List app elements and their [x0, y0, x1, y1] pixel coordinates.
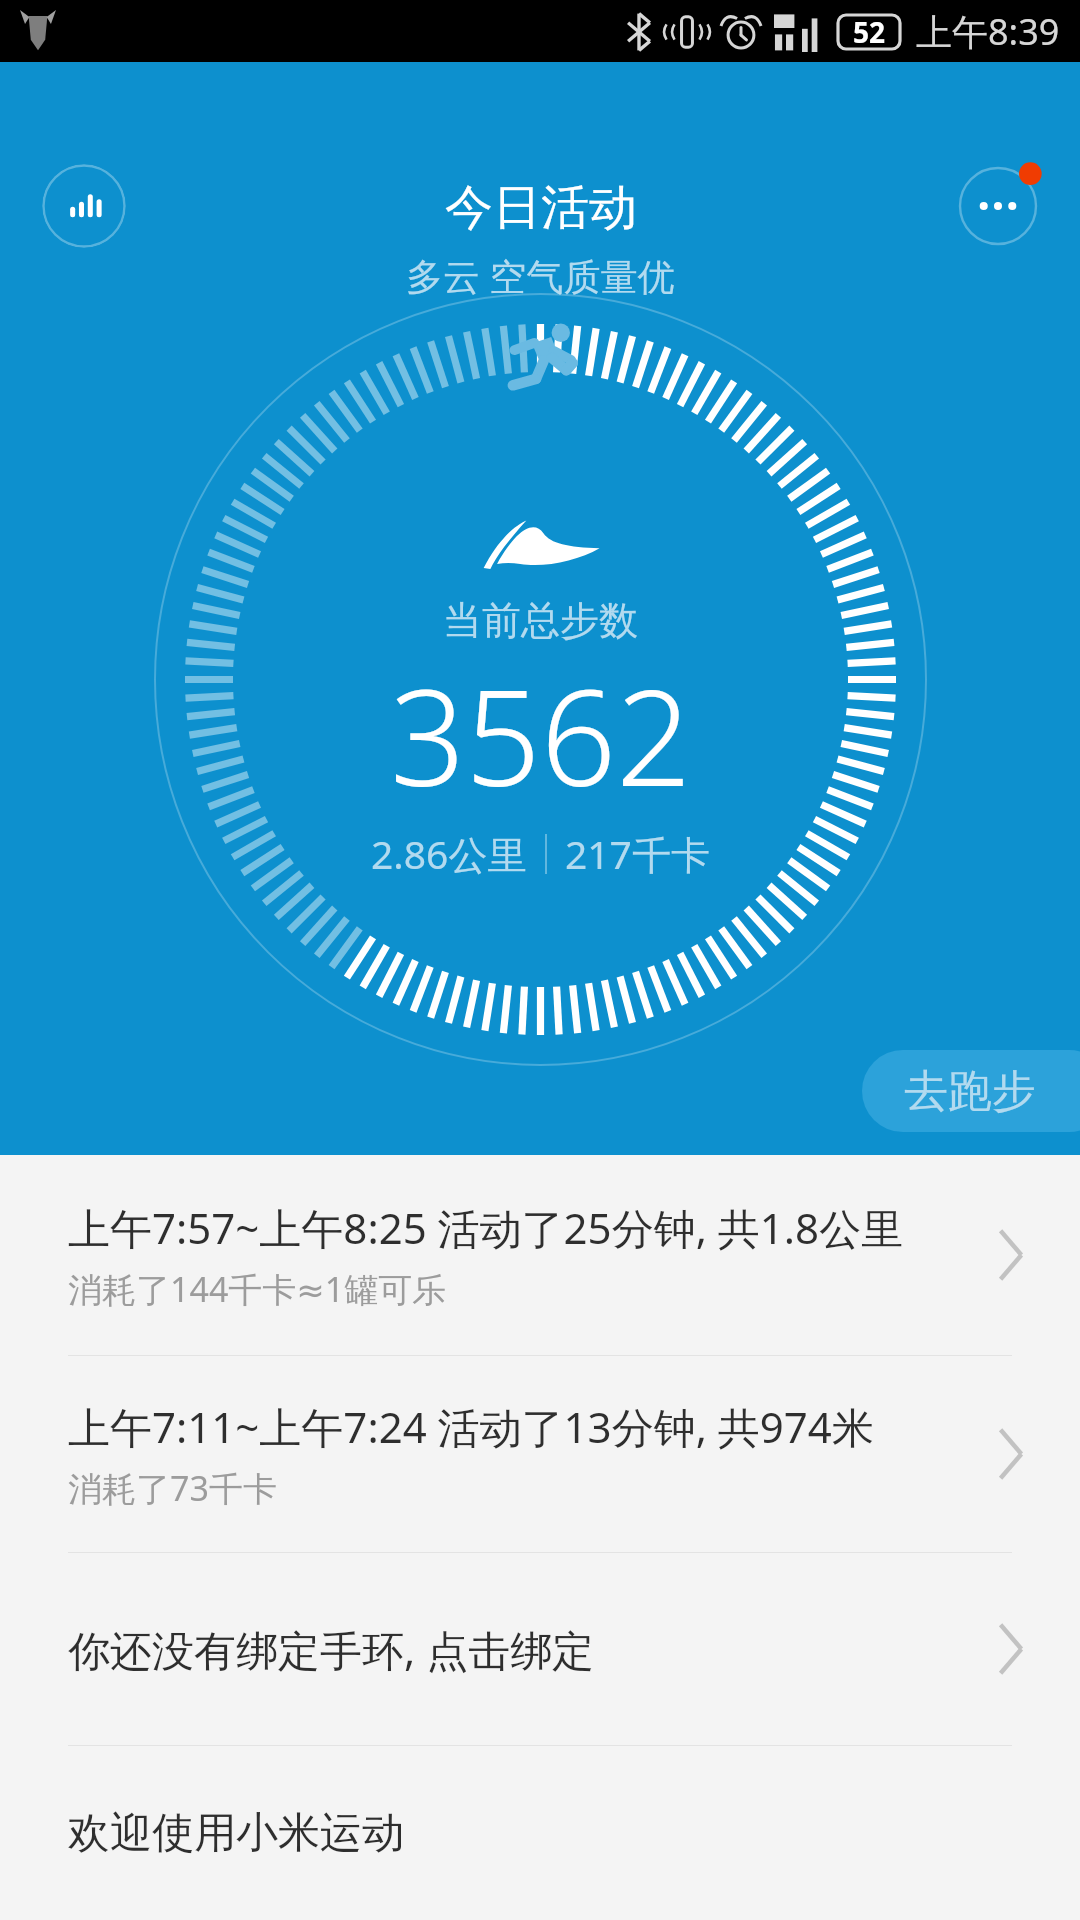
- button[interactable]: Statistics: [42, 164, 126, 248]
- staticText: 52: [853, 13, 886, 51]
- staticText: 上午7:11~上午7:24 活动了13分钟, 共974米: [68, 1398, 874, 1455]
- staticText: 上午7:57~上午8:25 活动了25分钟, 共1.8公里: [68, 1199, 904, 1256]
- button[interactable]: More options: [956, 164, 1040, 248]
- button[interactable]: 欢迎使用小米运动: [0, 1746, 1080, 1920]
- staticText: 217千卡: [565, 827, 710, 880]
- staticText: 2.86公里: [371, 827, 527, 880]
- staticText: 你还没有绑定手环, 点击绑定: [68, 1621, 595, 1678]
- staticText: 3562: [390, 645, 692, 825]
- staticText: 去跑步: [904, 1064, 1036, 1119]
- staticText: 当前总步数: [443, 596, 638, 645]
- staticText: 上午8:39: [916, 7, 1060, 56]
- staticText: 消耗了73千卡: [68, 1465, 277, 1511]
- staticText: 多云 空气质量优: [406, 250, 675, 301]
- staticText: 欢迎使用小米运动: [68, 1807, 404, 1860]
- staticText: 今日活动: [445, 178, 637, 238]
- button[interactable]: 上午7:11~上午7:24 活动了13分钟, 共974米: [0, 1356, 1080, 1552]
- staticText: 消耗了144千卡≈1罐可乐: [68, 1266, 447, 1312]
- button[interactable]: 去跑步: [862, 1050, 1080, 1132]
- button[interactable]: 上午7:57~上午8:25 活动了25分钟, 共1.8公里: [0, 1155, 1080, 1355]
- button[interactable]: 你还没有绑定手环, 点击绑定: [0, 1553, 1080, 1745]
